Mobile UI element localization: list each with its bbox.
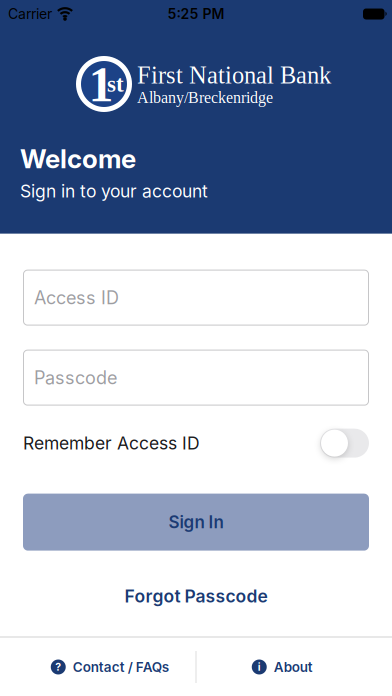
staticText: Remember Access ID [23,432,200,454]
staticText: 1 [88,57,113,112]
staticText: 5:25 PM [167,5,224,22]
button[interactable]: ? [24,638,195,696]
staticText: Sign In [168,512,223,532]
staticText: Access ID [34,287,119,308]
staticText: Forgot Passcode [124,586,267,607]
button[interactable]: i [197,638,368,696]
staticText: i [258,661,261,673]
staticText: Sign in to your account [20,180,208,202]
staticText: About [274,659,313,675]
staticText: Albany/Breckenridge [137,89,273,106]
staticText: Passcode [34,367,117,388]
staticText: st [107,71,124,97]
staticText: Welcome [20,143,136,174]
staticText: Contact / FAQs [73,659,169,675]
button[interactable]: Remember Access ID [320,429,369,458]
button[interactable]: Sign In [23,494,369,551]
staticText: Carrier [8,5,52,22]
staticText: First National Bank [137,62,331,89]
button[interactable]: Forgot Passcode [124,586,267,607]
staticText: ? [55,661,61,673]
